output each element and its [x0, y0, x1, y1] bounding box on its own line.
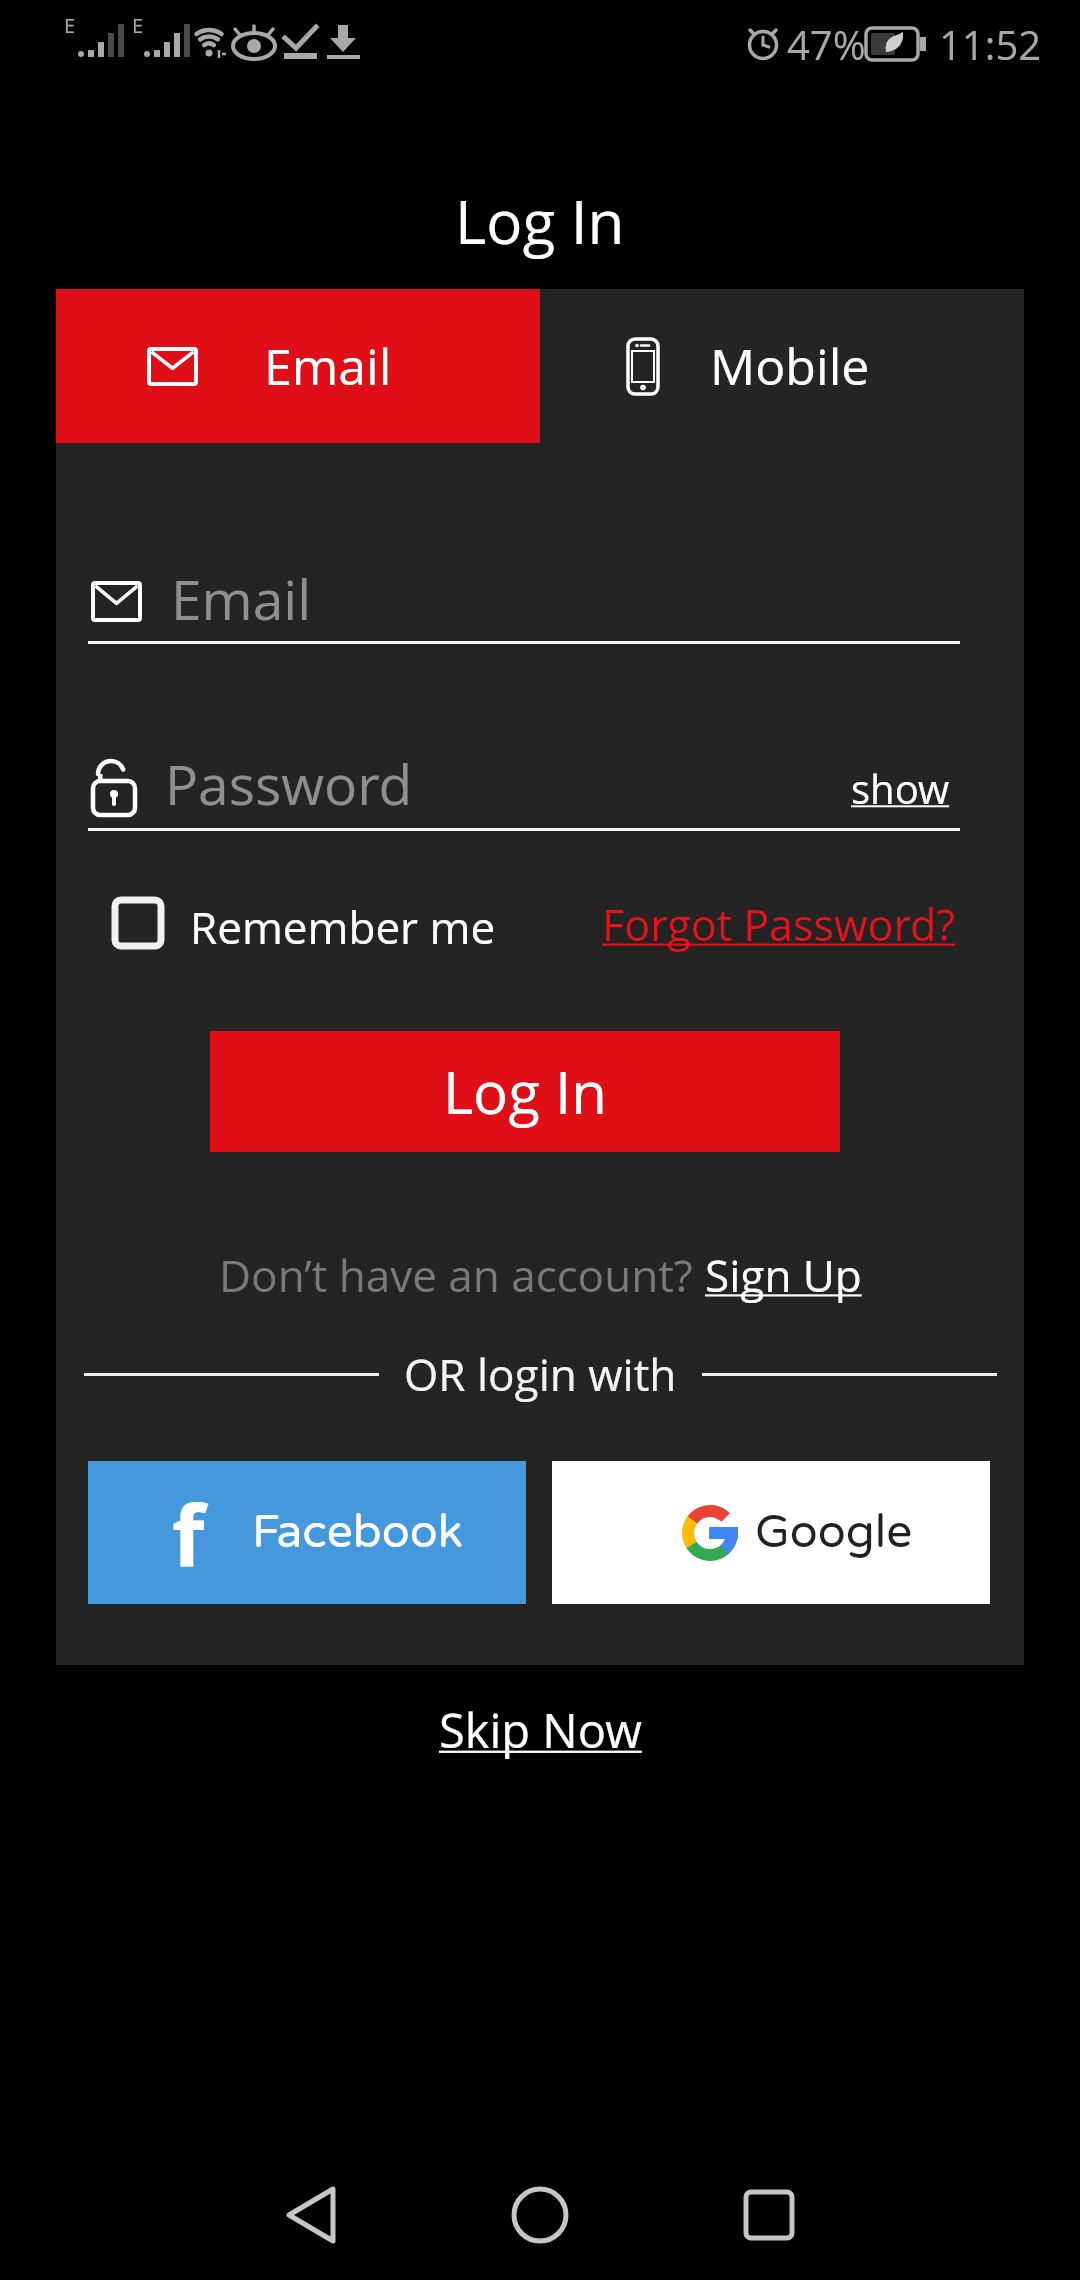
staticText: OR login with — [404, 1344, 677, 1404]
button[interactable]: show — [845, 760, 955, 816]
staticText: 47% — [787, 17, 866, 71]
staticText: Google — [755, 1505, 913, 1560]
staticText: E — [64, 12, 76, 39]
staticText: Log In — [455, 180, 625, 262]
button[interactable] — [112, 897, 164, 949]
staticText: Password — [165, 746, 413, 821]
staticText: Don’t have an account? — [219, 1245, 705, 1305]
staticText: Log In — [443, 1052, 607, 1131]
staticText: Email — [171, 561, 312, 636]
button[interactable]: Google — [552, 1461, 990, 1604]
button[interactable]: Email — [56, 289, 540, 443]
staticText: 11:52 — [939, 17, 1042, 71]
button[interactable]: f — [88, 1461, 526, 1604]
staticText: f — [172, 1476, 205, 1590]
staticText: Remember me — [190, 897, 496, 949]
staticText: E — [132, 12, 144, 39]
staticText: Email — [264, 332, 392, 400]
staticText: Mobile — [710, 332, 870, 400]
button[interactable]: Log In — [210, 1031, 840, 1152]
button[interactable] — [88, 742, 828, 832]
button[interactable]: Forgot Password? — [602, 895, 955, 954]
button[interactable]: Skip Now — [439, 1698, 642, 1762]
staticText: show — [851, 761, 950, 815]
button[interactable]: Mobile — [540, 289, 1024, 443]
button[interactable] — [88, 555, 960, 647]
staticText: Facebook — [252, 1505, 463, 1560]
button[interactable]: Sign Up — [705, 1245, 862, 1305]
